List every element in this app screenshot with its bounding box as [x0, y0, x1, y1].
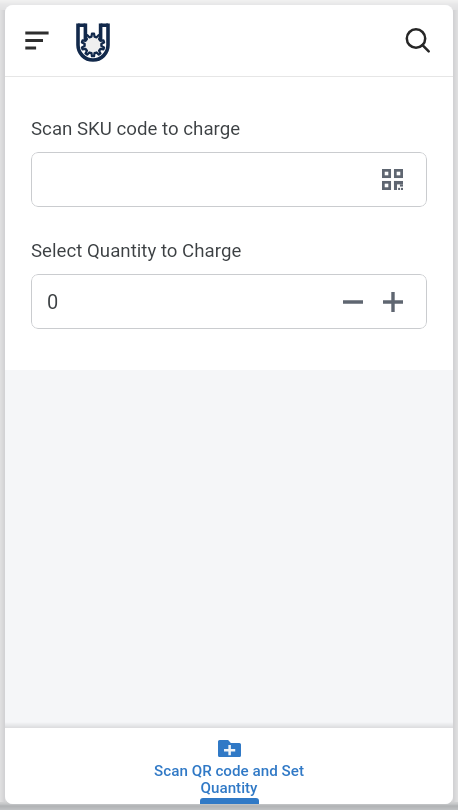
button[interactable]: Scan SKU code: [31, 152, 427, 207]
button[interactable]: Search: [398, 21, 438, 61]
staticText: Scan SKU code to charge: [31, 118, 241, 140]
button[interactable]: Menu: [19, 23, 55, 59]
button[interactable]: Scan QR code and Set Quantity: [5, 728, 453, 797]
staticText: 0: [47, 290, 59, 313]
button[interactable]: Decrease quantity: [336, 285, 370, 319]
staticText: Select Quantity to Charge: [31, 240, 242, 262]
button[interactable]: Increase quantity: [376, 285, 410, 319]
staticText: Scan QR code and Set Quantity: [149, 762, 309, 797]
